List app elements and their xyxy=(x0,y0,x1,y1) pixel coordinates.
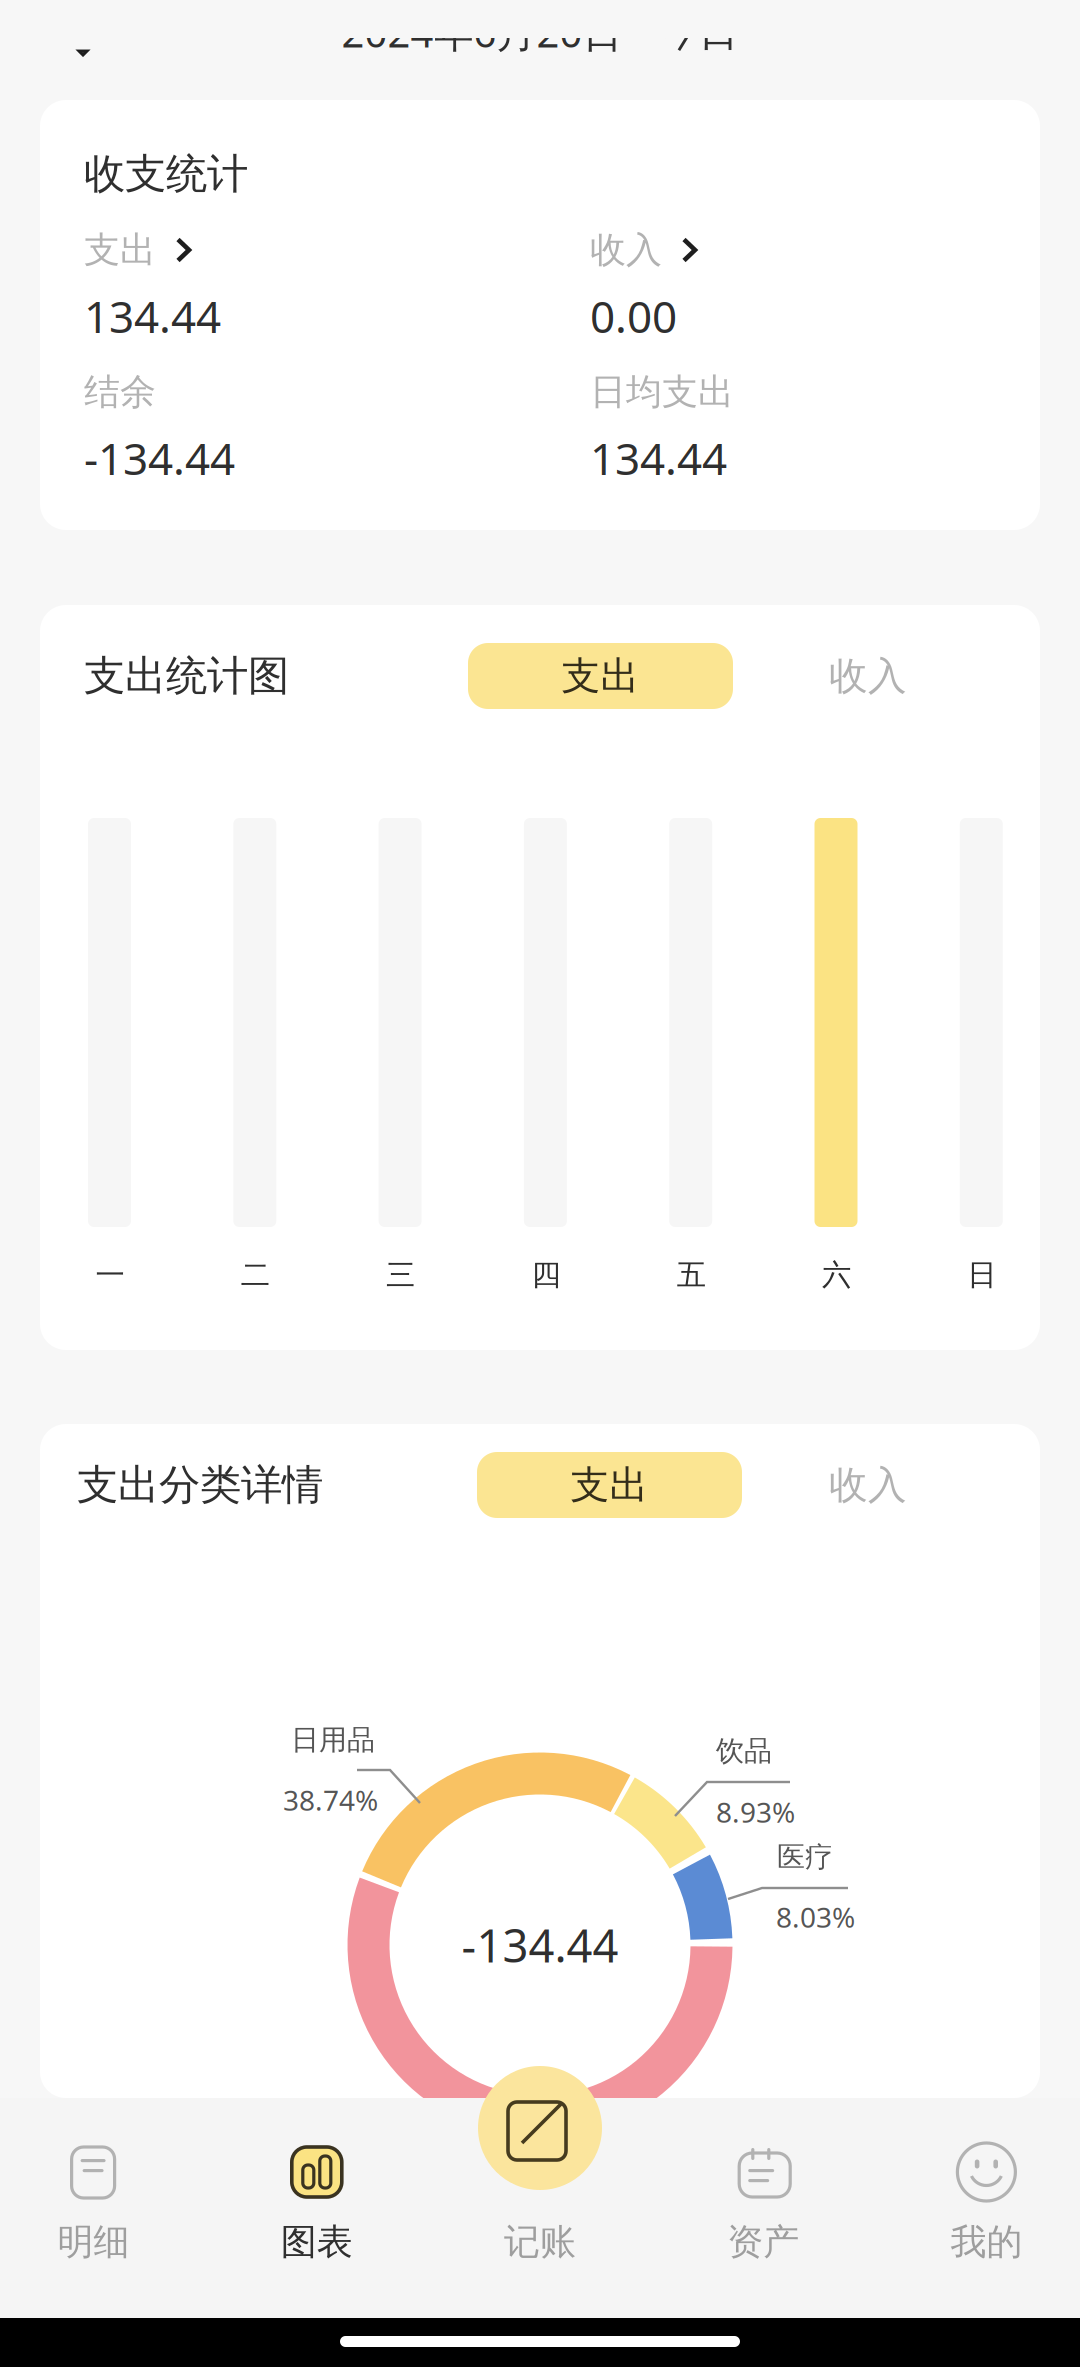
staticText: 收支统计 xyxy=(84,149,248,199)
staticText: 支出统计图 xyxy=(84,651,289,701)
button[interactable]: 2024年6月20日 xyxy=(0,9,1080,55)
button[interactable]: 收入 xyxy=(590,228,996,337)
staticText: 记账 xyxy=(504,2220,576,2264)
button[interactable]: 收入 xyxy=(813,643,923,709)
staticText: 支出 xyxy=(570,1461,648,1509)
staticText: 134.44 xyxy=(84,287,221,345)
staticText: 0.00 xyxy=(590,287,677,345)
staticText: 收入 xyxy=(829,652,907,700)
staticText: 日均支出 xyxy=(590,370,734,414)
staticText: 五 xyxy=(677,1257,706,1293)
staticText: 三 xyxy=(386,1257,415,1293)
button[interactable]: 资产 xyxy=(652,2098,875,2318)
staticText: 医疗 xyxy=(777,1840,833,1874)
staticText: -134.44 xyxy=(461,1915,618,1975)
staticText: 支出 xyxy=(84,228,156,272)
staticText: 日 xyxy=(967,1257,996,1293)
button[interactable]: 图表 xyxy=(205,2098,428,2318)
staticText: 134.44 xyxy=(590,429,727,487)
button[interactable]: 支出 xyxy=(477,1452,742,1518)
staticText: 明细 xyxy=(58,2220,130,2264)
button[interactable]: 支出 xyxy=(468,643,733,709)
staticText: 收入 xyxy=(590,228,662,272)
button[interactable]: 明细 xyxy=(0,2098,205,2318)
button[interactable]: 返回 xyxy=(78,50,88,56)
staticText: 收入 xyxy=(829,1461,907,1509)
button[interactable]: 我的 xyxy=(875,2098,1080,2318)
staticText: 38.74% xyxy=(283,1781,378,1819)
staticText: 8.93% xyxy=(716,1793,795,1831)
staticText: 结余 xyxy=(84,370,156,414)
button[interactable]: 记账 xyxy=(428,2098,652,2318)
staticText: 日用品 xyxy=(291,1723,375,1757)
staticText: 资产 xyxy=(727,2220,799,2264)
staticText: 支出 xyxy=(561,652,639,700)
staticText: 今日 xyxy=(658,7,738,56)
staticText: 我的 xyxy=(950,2220,1022,2264)
button[interactable]: 记账 xyxy=(478,2066,602,2190)
staticText: 二 xyxy=(241,1257,270,1293)
staticText: 饮品 xyxy=(716,1734,772,1768)
staticText: -134.44 xyxy=(84,429,235,487)
staticText: 四 xyxy=(531,1257,560,1293)
staticText: 六 xyxy=(822,1257,851,1293)
staticText: 图表 xyxy=(281,2220,353,2264)
button[interactable]: 收入 xyxy=(813,1452,923,1518)
staticText: 2024年6月20日 xyxy=(341,5,622,58)
button[interactable]: 支出 xyxy=(84,228,590,337)
staticText: 8.03% xyxy=(776,1898,855,1936)
staticText: 支出分类详情 xyxy=(77,1460,323,1510)
staticText: 一 xyxy=(95,1257,124,1293)
